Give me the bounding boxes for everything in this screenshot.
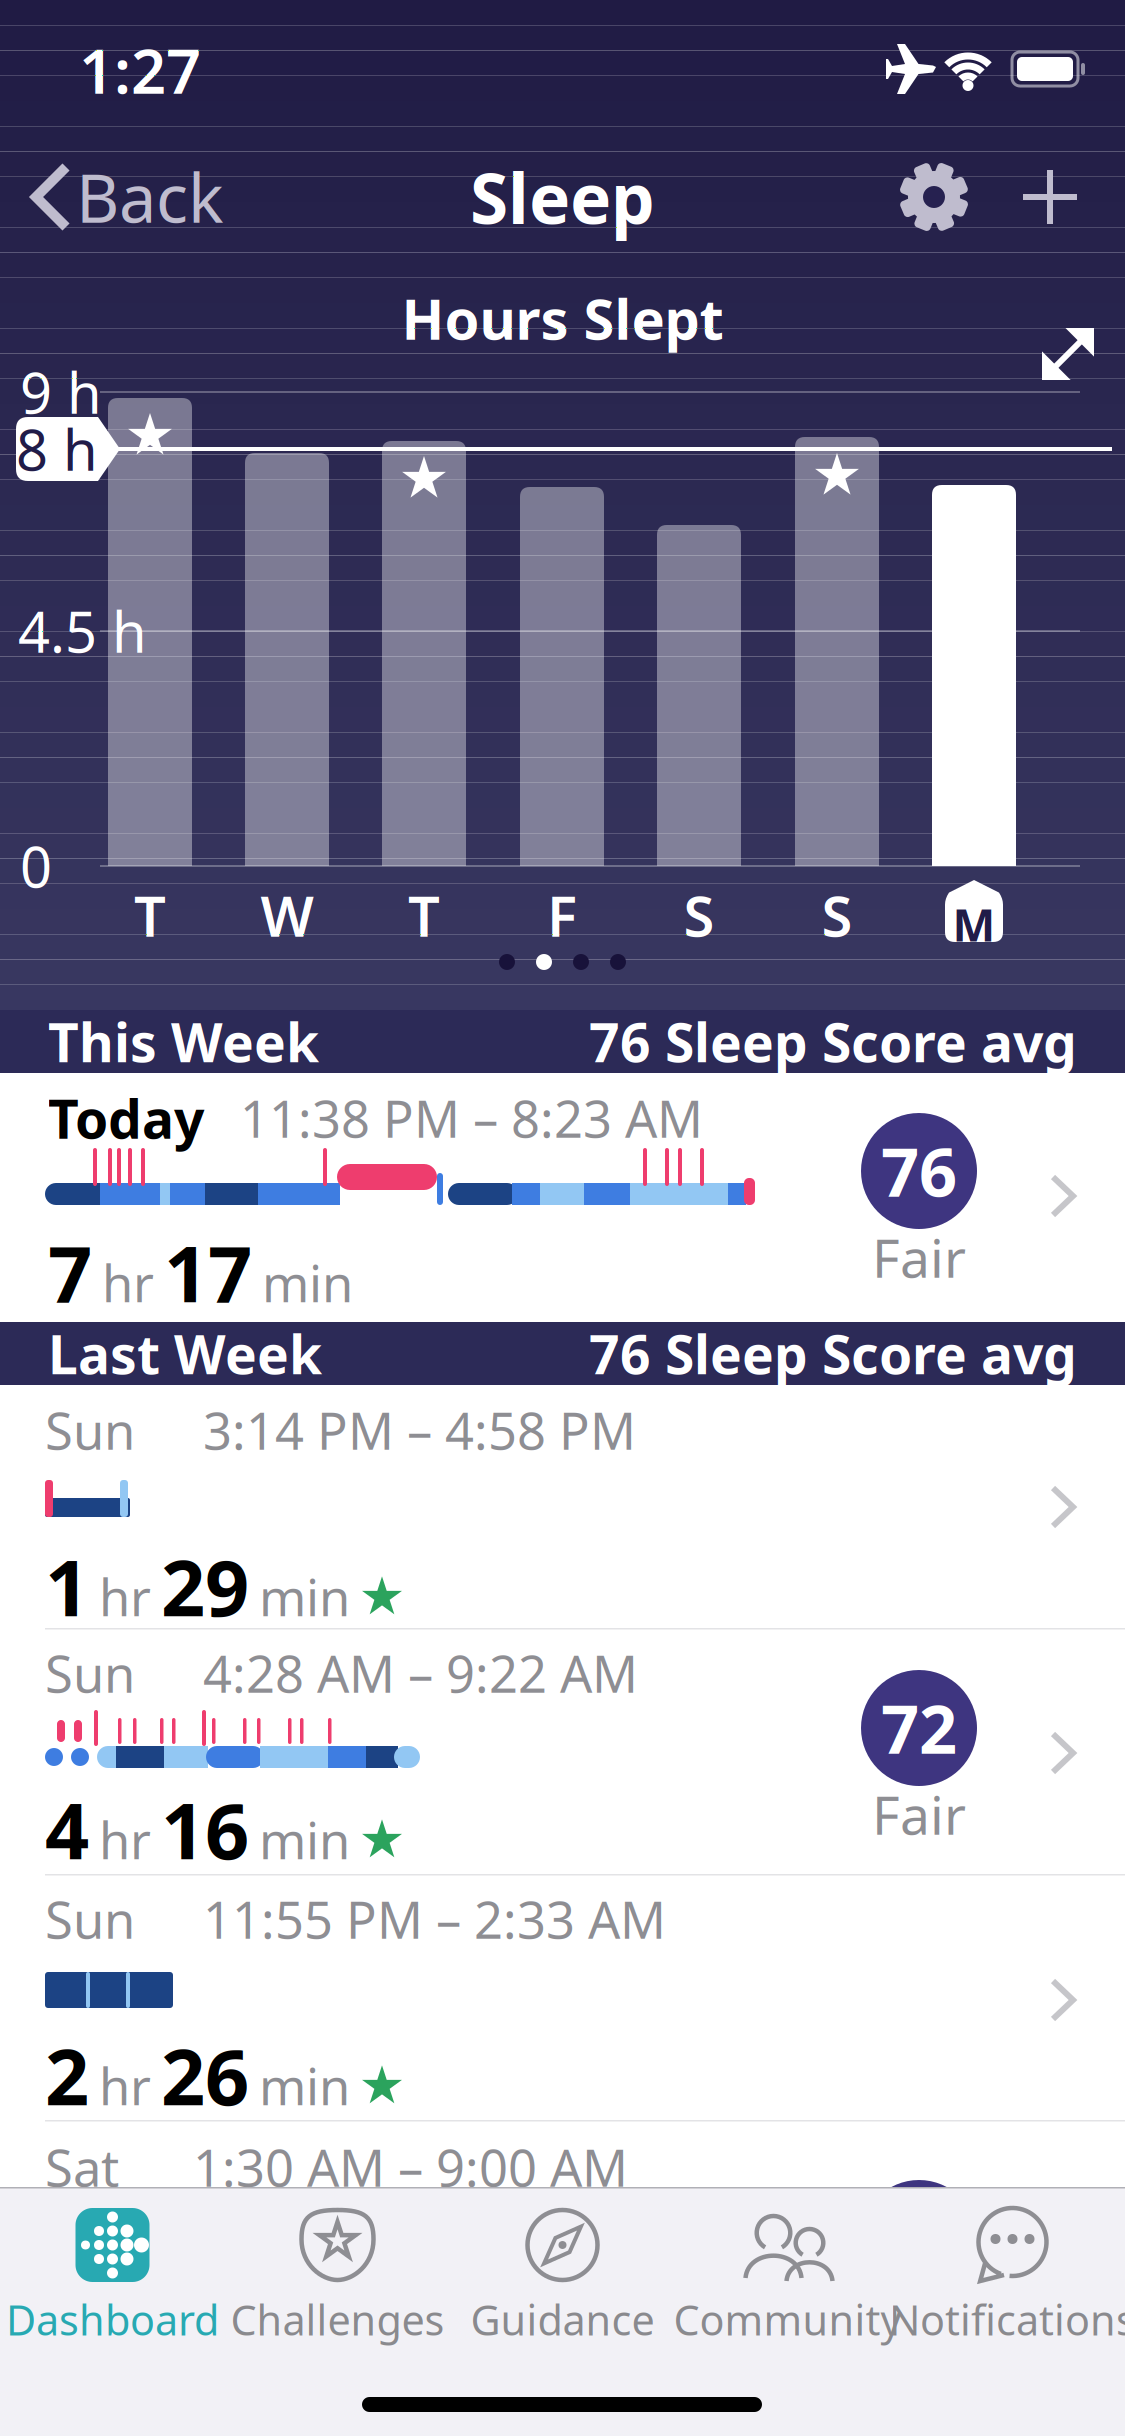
button[interactable]: Sun — [0, 1628, 1125, 1874]
staticText: Hours Slept — [401, 281, 723, 355]
staticText: 1 — [45, 1535, 89, 1638]
staticText: 9 h — [20, 355, 102, 429]
button[interactable]: Add sleep log — [1015, 162, 1085, 232]
staticText: S — [683, 878, 714, 952]
staticText: T — [134, 878, 166, 952]
staticText: 1:27 — [79, 29, 201, 111]
staticText: 76 Sleep Score avg — [589, 1006, 1077, 1077]
staticText: Sun — [45, 1885, 135, 1953]
staticText: 4:28 AM – 9:22 AM — [203, 1639, 638, 1707]
staticText: 7 — [48, 1221, 92, 1324]
button[interactable]: Settings — [899, 162, 969, 232]
staticText: S — [821, 878, 852, 952]
button[interactable]: Expand chart — [1036, 322, 1100, 386]
staticText: 76 Sleep Score avg — [589, 1318, 1077, 1389]
staticText: 16 — [161, 1778, 249, 1881]
staticText: 76 — [881, 1127, 957, 1215]
staticText: hr — [99, 1563, 151, 1630]
staticText: 11:55 PM – 2:33 AM — [203, 1885, 666, 1953]
staticText: 4 — [45, 1778, 89, 1881]
button[interactable]: Guidance — [450, 2208, 675, 2368]
staticText: 1:30 AM – 9:00 AM — [193, 2133, 628, 2201]
staticText: 29 — [161, 1535, 249, 1638]
staticText: 72 — [881, 1684, 957, 1772]
staticText: Sun — [45, 1639, 135, 1707]
staticText: F — [547, 878, 577, 952]
staticText: 26 — [161, 2024, 249, 2127]
staticText: 8 h — [16, 412, 98, 486]
button[interactable]: Challenges — [225, 2208, 450, 2368]
staticText: Dashboard — [6, 2292, 219, 2347]
staticText: min — [262, 1249, 353, 1316]
staticText: 11:38 PM – 8:23 AM — [240, 1084, 703, 1152]
button[interactable]: Dashboard — [0, 2208, 225, 2368]
staticText: 0 — [20, 829, 52, 903]
staticText: Today — [48, 1083, 204, 1153]
staticText: W — [260, 878, 313, 952]
button[interactable]: Notifications — [900, 2208, 1125, 2368]
staticText: This Week — [48, 1006, 319, 1077]
staticText: Sleep — [470, 151, 655, 243]
staticText: min — [259, 2052, 350, 2119]
staticText: Last Week — [48, 1318, 322, 1389]
staticText: hr — [99, 2052, 151, 2119]
button[interactable]: Back — [36, 162, 224, 232]
staticText: Fair — [872, 1222, 966, 1292]
staticText: Fair — [872, 1779, 966, 1849]
staticText: hr — [99, 1806, 151, 1873]
staticText: hr — [102, 1249, 154, 1316]
staticText: 3:14 PM – 4:58 PM — [203, 1396, 636, 1464]
staticText: min — [259, 1563, 350, 1630]
staticText: 17 — [164, 1221, 252, 1324]
staticText: Back — [76, 153, 224, 241]
staticText: Guidance — [470, 2292, 654, 2347]
button[interactable]: Sun — [0, 1385, 1125, 1631]
staticText: Community — [673, 2292, 901, 2347]
staticText: M — [952, 894, 995, 954]
button[interactable]: Sun — [0, 1874, 1125, 2120]
staticText: Challenges — [230, 2292, 444, 2347]
staticText: Sat — [45, 2133, 119, 2201]
staticText: T — [408, 878, 440, 952]
staticText: 4.5 h — [18, 594, 147, 668]
staticText: 2 — [45, 2024, 89, 2127]
staticText: min — [259, 1806, 350, 1873]
staticText: Notifications — [889, 2292, 1125, 2347]
button[interactable]: Community — [675, 2208, 900, 2368]
button[interactable]: Today — [0, 1073, 1125, 1322]
staticText: Sun — [45, 1396, 135, 1464]
